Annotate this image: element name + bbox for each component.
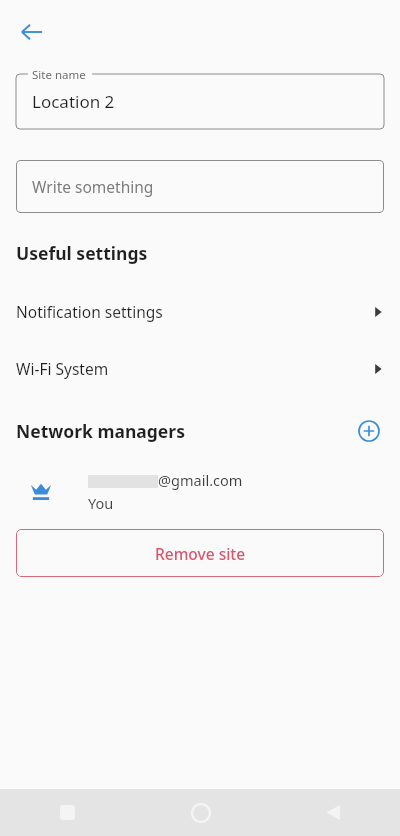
button[interactable]: Wi-Fi System: [0, 340, 400, 397]
button[interactable]: Add manager: [352, 414, 386, 448]
staticText: Write something: [32, 176, 154, 197]
button[interactable]: Back: [8, 8, 56, 56]
button[interactable]: Write something: [16, 160, 384, 213]
button[interactable]: Notification settings: [0, 283, 400, 340]
button[interactable]: Remove site: [16, 529, 384, 577]
staticText: Wi-Fi System: [16, 358, 109, 379]
staticText: Site name: [32, 67, 86, 83]
staticText: You: [88, 493, 114, 513]
staticText: Network managers: [16, 419, 185, 443]
staticText: Notification settings: [16, 301, 163, 322]
staticText: Useful settings: [16, 241, 148, 265]
staticText: Location 2: [32, 90, 115, 113]
staticText: Remove site: [155, 543, 246, 564]
staticText: @gmail.com: [158, 470, 243, 490]
button[interactable]: @gmail.com: [0, 465, 400, 517]
